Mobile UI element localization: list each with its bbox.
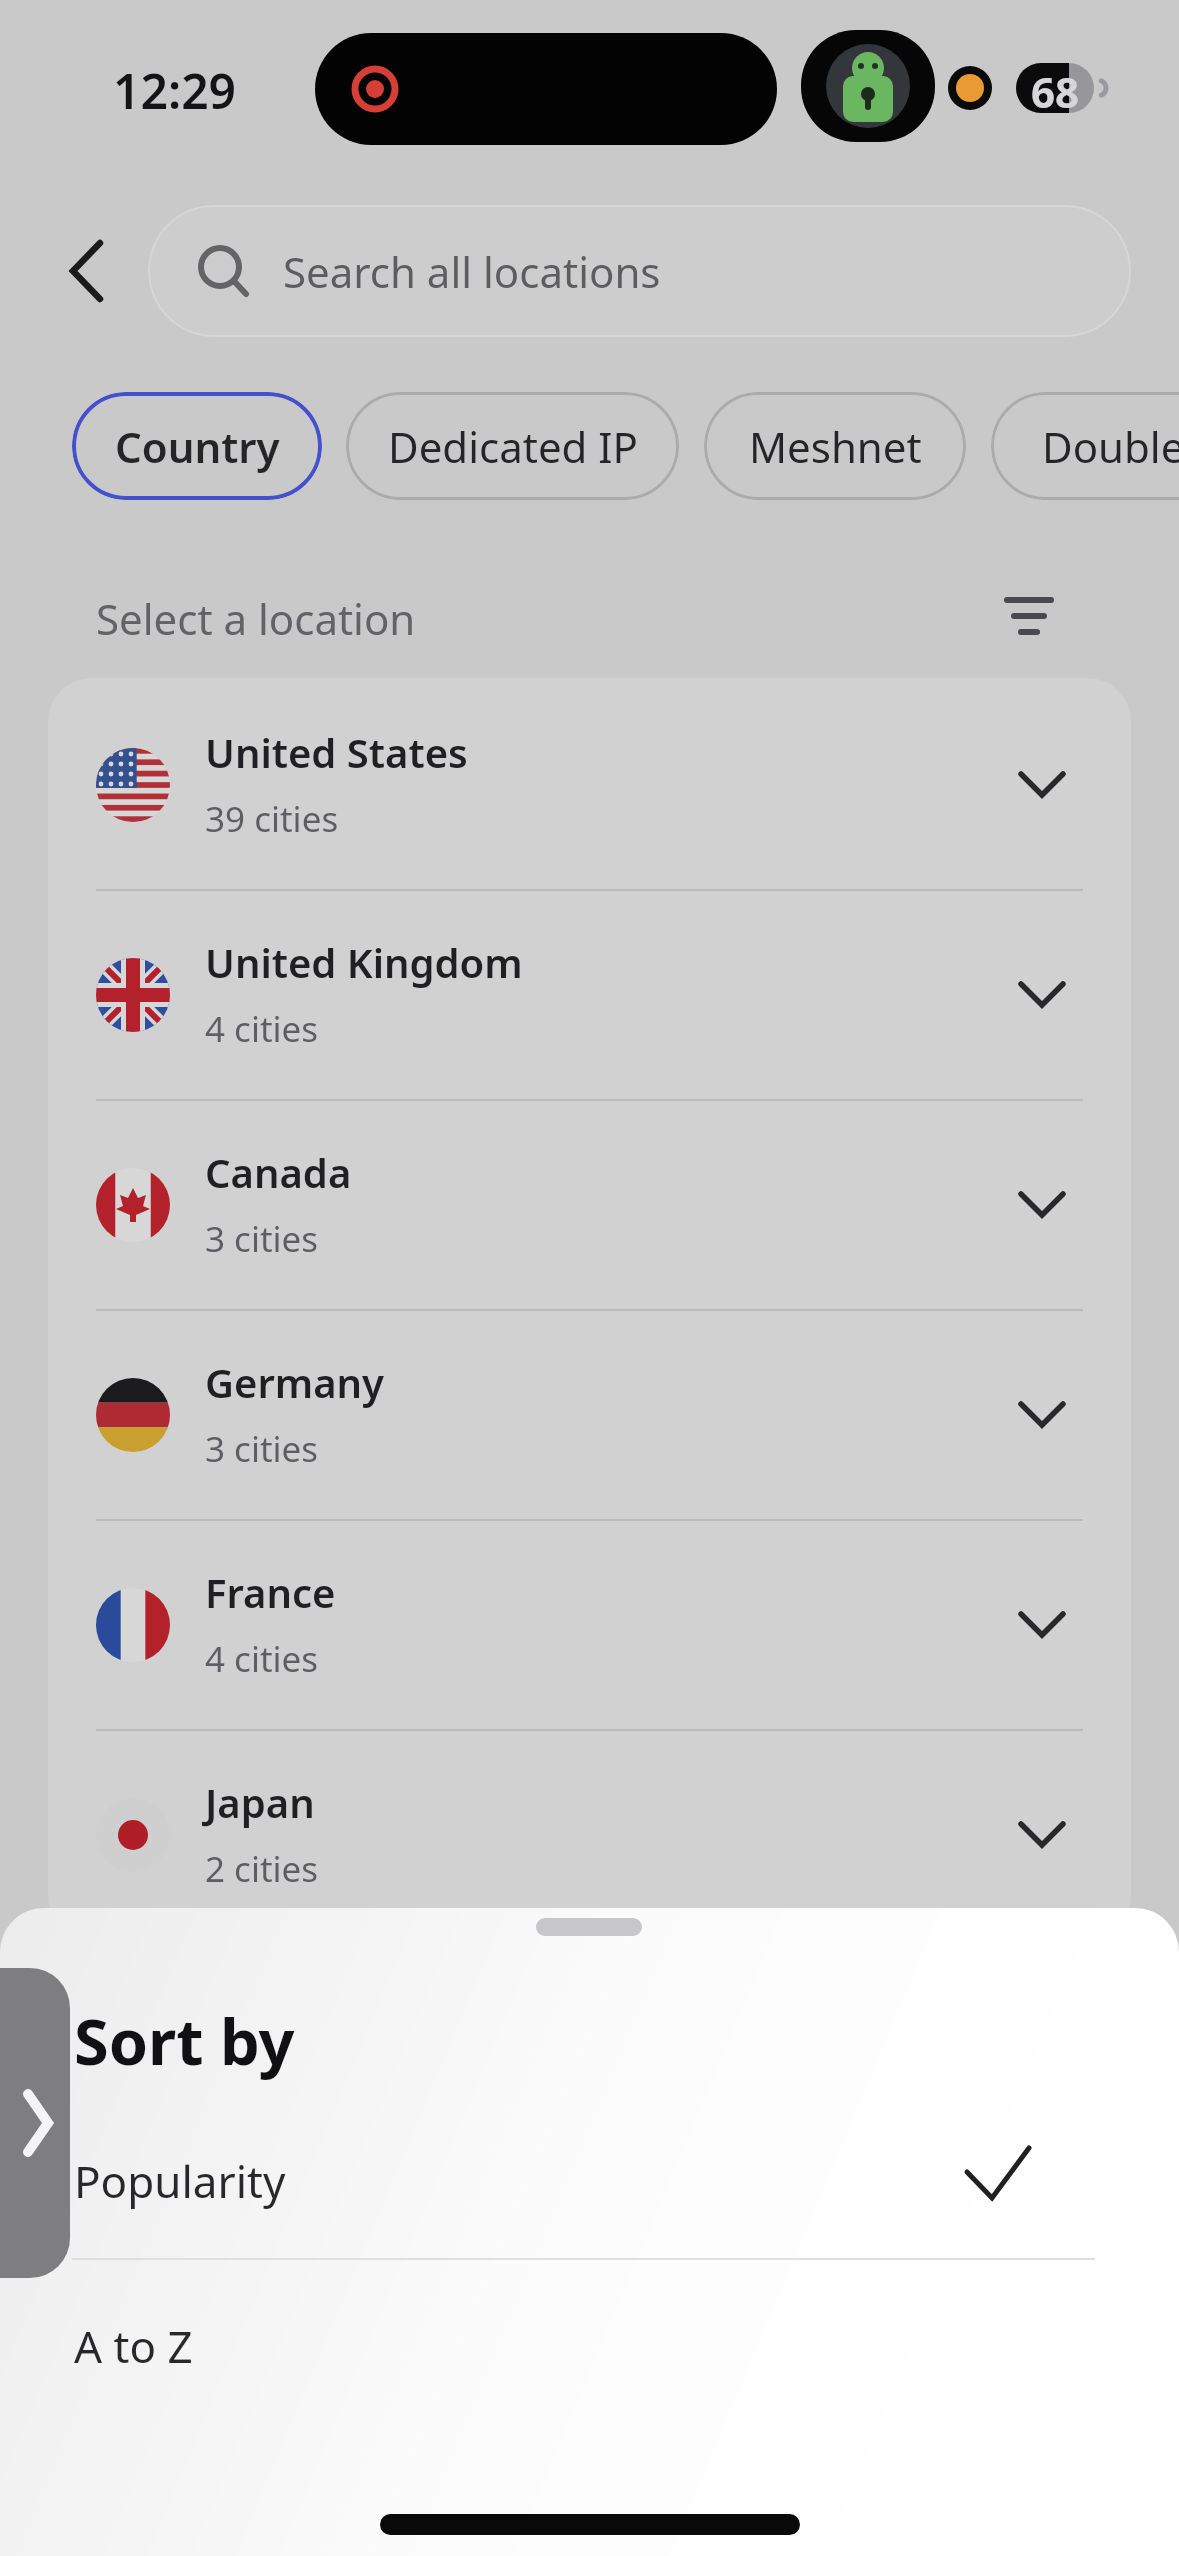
button[interactable]	[0, 1968, 70, 2278]
button[interactable]: Popularity	[40, 2128, 1140, 2233]
button[interactable]: Double	[991, 392, 1179, 500]
staticText: Country	[115, 418, 280, 475]
staticText: Meshnet	[749, 418, 922, 475]
button[interactable]: Dedicated IP	[346, 392, 679, 500]
staticText: United Kingdom	[205, 935, 523, 989]
staticText: A to Z	[74, 2316, 193, 2376]
staticText: Japan	[205, 1775, 315, 1829]
button[interactable]: United Kingdom	[48, 890, 1131, 1100]
staticText: 4 cities	[205, 1005, 319, 1053]
button[interactable]: Canada	[48, 1100, 1131, 1310]
button[interactable]: Country	[72, 392, 322, 500]
staticText: 2 cities	[205, 1845, 319, 1893]
staticText: Sort by	[74, 1998, 295, 2084]
button[interactable]: United States	[48, 680, 1131, 890]
staticText: Search all locations	[283, 243, 661, 300]
button[interactable]	[52, 231, 132, 311]
staticText: France	[205, 1565, 336, 1619]
button[interactable]: Meshnet	[704, 392, 966, 500]
staticText: 39 cities	[205, 795, 339, 843]
button[interactable]: France	[48, 1520, 1131, 1730]
staticText: 12:29	[113, 58, 237, 118]
staticText: Dedicated IP	[388, 418, 638, 475]
button[interactable]: A to Z	[40, 2293, 1140, 2398]
staticText: 3 cities	[205, 1215, 319, 1263]
staticText: 68	[1031, 63, 1080, 113]
staticText: Select a location	[96, 590, 416, 644]
staticText: Popularity	[74, 2151, 286, 2211]
button[interactable]: Germany	[48, 1310, 1131, 1520]
button[interactable]: Search all locations	[148, 205, 1131, 337]
staticText: Canada	[205, 1145, 352, 1199]
staticText: Germany	[205, 1355, 385, 1409]
button[interactable]: Japan	[48, 1730, 1131, 1940]
staticText: Double	[1042, 418, 1179, 475]
staticText: United States	[205, 725, 468, 779]
staticText: 4 cities	[205, 1635, 319, 1683]
staticText: 3 cities	[205, 1425, 319, 1473]
